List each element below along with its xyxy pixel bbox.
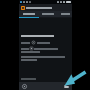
button[interactable]: Tab two xyxy=(38,11,58,17)
button[interactable]: Tab one xyxy=(19,11,38,17)
button[interactable]: Tab three xyxy=(58,11,72,17)
button[interactable] xyxy=(19,4,72,11)
button[interactable]: Open folder xyxy=(64,84,69,89)
button[interactable]: Settings xyxy=(22,84,27,89)
